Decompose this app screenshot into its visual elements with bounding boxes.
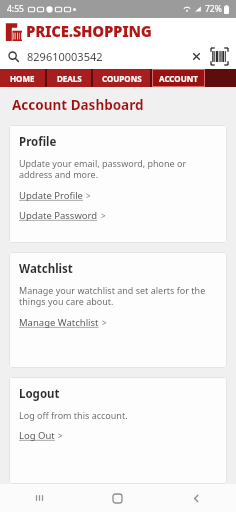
staticText: Manage your watchlist and set alerts for… [19, 284, 217, 308]
staticText: Update Profile [19, 189, 83, 202]
staticText: COUPONS [102, 73, 142, 84]
staticText: Watchlist [19, 261, 73, 277]
staticText: > [86, 190, 91, 201]
button[interactable]: Manage Watchlist [19, 316, 107, 329]
button[interactable]: Update Password [19, 209, 106, 222]
button[interactable]: Back [157, 484, 236, 512]
staticText: DEALS [57, 73, 82, 84]
button[interactable]: Clear [191, 51, 202, 62]
staticText: > [101, 210, 106, 221]
button[interactable]: Update Profile [19, 189, 91, 202]
staticText: ACCOUNT [159, 73, 198, 84]
button[interactable]: DEALS [47, 69, 91, 87]
staticText: Account Dashboard [12, 96, 144, 114]
button[interactable]: Log Out [19, 429, 63, 442]
staticText: > [58, 430, 63, 441]
staticText: HOME [10, 73, 35, 84]
staticText: Update your email, password, phone or ad… [19, 157, 217, 181]
staticText: Manage Watchlist [19, 316, 99, 329]
button[interactable]: Home [78, 484, 157, 512]
button[interactable]: Search [8, 51, 19, 62]
staticText: Logout [19, 386, 60, 402]
staticText: 4:55 [7, 3, 24, 15]
button[interactable]: HOME [0, 69, 45, 87]
button[interactable]: Recents [0, 484, 78, 512]
staticText: > [102, 317, 107, 328]
button[interactable]: Scan barcode [211, 48, 228, 65]
staticText: 72% [205, 3, 222, 15]
staticText: 829610003542 [27, 49, 191, 64]
button[interactable]: COUPONS [93, 69, 150, 87]
staticText: Update Password [19, 209, 98, 222]
button[interactable]: ACCOUNT [152, 69, 205, 87]
staticText: Log Out [19, 429, 55, 442]
staticText: PRICE.SHOPPING [26, 21, 152, 41]
staticText: Log off from this account. [19, 409, 128, 421]
staticText: Profile [19, 134, 57, 150]
